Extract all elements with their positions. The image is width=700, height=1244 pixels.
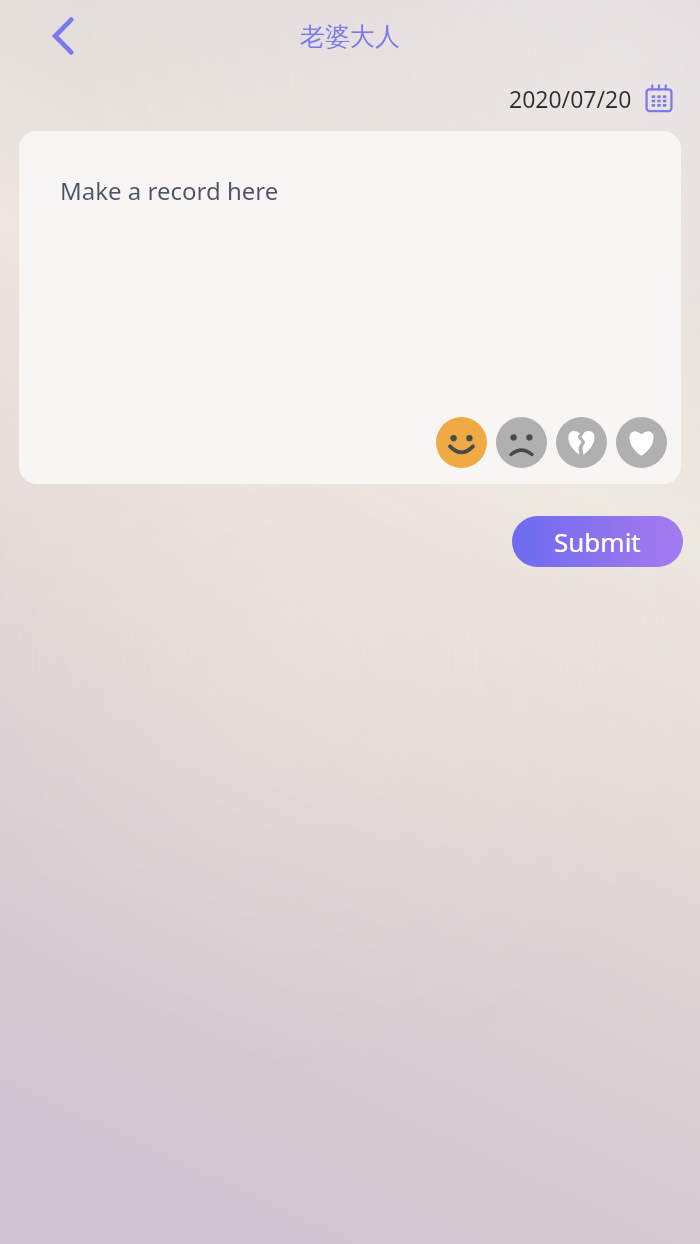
button[interactable]: Submit [512, 516, 683, 567]
button[interactable]: 2020/07/20 [505, 79, 678, 118]
button[interactable]: Broken heart [556, 417, 607, 468]
button[interactable]: Make a record here [19, 131, 681, 484]
staticText: 老婆大人 [300, 21, 400, 52]
button[interactable]: Love [616, 417, 667, 468]
staticText: Submit [554, 524, 641, 559]
button[interactable]: Back [30, 2, 98, 70]
staticText: 2020/07/20 [509, 83, 632, 114]
button[interactable]: Sad [496, 417, 547, 468]
button[interactable]: Happy [436, 417, 487, 468]
staticText: Make a record here [60, 174, 279, 207]
